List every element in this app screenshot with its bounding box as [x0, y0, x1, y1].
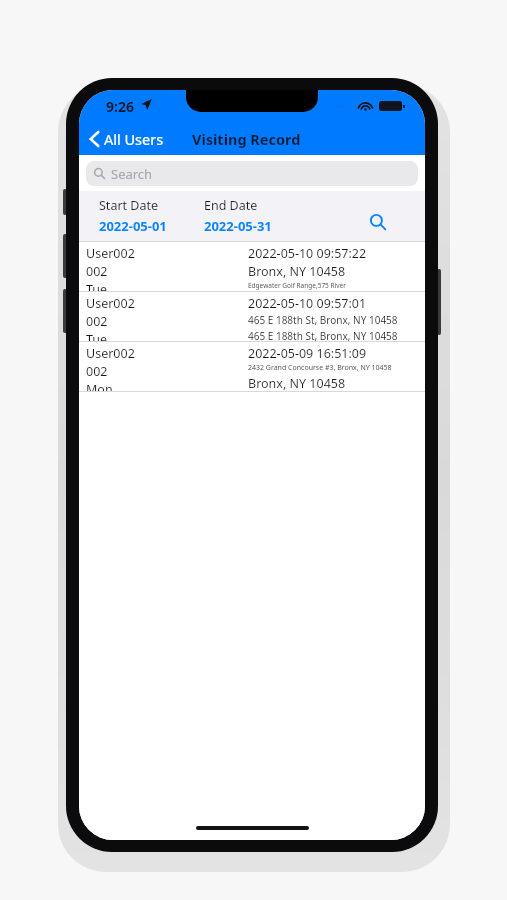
staticText: All Users [104, 129, 164, 149]
staticText: Mon [86, 381, 113, 391]
staticText: 9:26 [106, 97, 134, 116]
staticText: 2022-05-09 16:51:09 [248, 345, 367, 362]
staticText: 2022-05-10 09:57:01 [248, 295, 367, 312]
staticText: User002 [86, 245, 135, 262]
button[interactable]: User002 [79, 292, 425, 341]
button[interactable]: All Users [86, 125, 168, 153]
staticText: 465 E 188th St, Bronx, NY 10458 [248, 313, 398, 327]
staticText: End Date [204, 197, 258, 214]
staticText: 002 [86, 263, 108, 280]
button[interactable]: Search records [364, 208, 392, 236]
staticText: Tue [86, 331, 108, 341]
button[interactable]: End Date [202, 195, 274, 237]
button[interactable]: Start Date [97, 195, 169, 237]
staticText: Edgewater Golf Range,575 River Rd,Edgewa… [248, 281, 346, 291]
staticText: User002 [86, 295, 135, 312]
staticText: Bronx, NY 10458 [248, 263, 346, 280]
staticText: 2022-05-31 [204, 217, 272, 235]
staticText: 002 [86, 363, 108, 380]
staticText: 2022-05-10 09:57:22 [248, 245, 367, 262]
button[interactable]: Search [86, 161, 418, 186]
staticText: Search [111, 165, 153, 183]
staticText: 465 E 188th St, Bronx, NY 10458 [248, 329, 398, 341]
staticText: Start Date [99, 197, 159, 214]
staticText: Visiting Record [192, 129, 301, 149]
staticText: 002 [86, 313, 108, 330]
staticText: 2022-05-01 [99, 217, 167, 235]
button[interactable]: User002 [79, 242, 425, 291]
button[interactable]: User002 [79, 342, 425, 391]
staticText: Bronx, NY 10458 [248, 375, 346, 391]
staticText: User002 [86, 345, 135, 362]
staticText: Tue [86, 281, 108, 291]
staticText: 2432 Grand Concourse #3, Bronx, NY 10458 [248, 363, 392, 373]
